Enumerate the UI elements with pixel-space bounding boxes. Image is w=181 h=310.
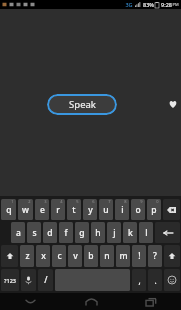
button[interactable]: Speak bbox=[47, 94, 117, 115]
button[interactable]: Back bbox=[0, 293, 61, 310]
staticText: 4 bbox=[60, 199, 63, 204]
button[interactable]: m bbox=[116, 245, 130, 267]
staticText: x bbox=[41, 250, 46, 262]
staticText: h bbox=[95, 227, 101, 239]
button[interactable]: ? bbox=[148, 245, 162, 267]
staticText: g bbox=[79, 227, 85, 239]
staticText: 0 bbox=[156, 199, 159, 204]
staticText: 8 bbox=[124, 199, 127, 204]
staticText: 7 bbox=[108, 199, 111, 204]
button[interactable]: r bbox=[51, 199, 65, 220]
staticText: m bbox=[119, 250, 128, 262]
staticText: n bbox=[104, 250, 110, 262]
button[interactable]: ?123 bbox=[1, 269, 19, 291]
staticText: 3 bbox=[44, 199, 47, 204]
staticText: 5 bbox=[76, 199, 79, 204]
button[interactable]: Shift bbox=[1, 245, 18, 267]
staticText: PM bbox=[172, 2, 179, 7]
button[interactable]: ! bbox=[132, 245, 146, 267]
button[interactable]: Enter bbox=[155, 222, 180, 243]
button[interactable]: t bbox=[67, 199, 81, 220]
staticText: ? bbox=[153, 250, 157, 262]
staticText: y bbox=[88, 204, 93, 216]
staticText: e bbox=[40, 204, 45, 216]
staticText: f bbox=[64, 227, 68, 239]
button[interactable]: h bbox=[91, 222, 105, 243]
button[interactable]: z bbox=[20, 245, 34, 267]
button[interactable]: a bbox=[11, 222, 25, 243]
button[interactable]: Recents bbox=[121, 293, 181, 310]
button[interactable]: , bbox=[132, 269, 146, 291]
button[interactable]: p bbox=[147, 199, 161, 220]
staticText: j bbox=[113, 227, 116, 239]
staticText: Speak bbox=[69, 98, 96, 111]
button[interactable]: l bbox=[139, 222, 153, 243]
staticText: 6 bbox=[92, 199, 95, 204]
staticText: a bbox=[16, 227, 21, 239]
button[interactable]: g bbox=[75, 222, 89, 243]
button[interactable]: Delete bbox=[163, 199, 180, 220]
button[interactable]: . bbox=[148, 269, 162, 291]
button[interactable]: i bbox=[115, 199, 129, 220]
button[interactable]: Favorite bbox=[165, 12, 181, 196]
button[interactable]: w bbox=[18, 199, 33, 220]
staticText: o bbox=[135, 204, 141, 216]
staticText: v bbox=[73, 250, 78, 262]
staticText: p bbox=[151, 204, 157, 216]
staticText: 9:28 bbox=[161, 1, 172, 8]
staticText: 9 bbox=[140, 199, 143, 204]
button[interactable]: v bbox=[68, 245, 82, 267]
staticText: 83% bbox=[143, 1, 154, 8]
staticText: 2 bbox=[28, 199, 31, 204]
button[interactable]: k bbox=[123, 222, 137, 243]
staticText: 3G bbox=[125, 1, 133, 8]
button[interactable]: q bbox=[1, 199, 16, 220]
staticText: / bbox=[44, 274, 48, 286]
staticText: . bbox=[154, 275, 157, 286]
button[interactable]: y bbox=[83, 199, 97, 220]
button[interactable]: / bbox=[38, 269, 53, 291]
button[interactable]: n bbox=[100, 245, 114, 267]
staticText: s bbox=[32, 227, 37, 239]
button[interactable]: b bbox=[84, 245, 98, 267]
staticText: , bbox=[138, 275, 141, 286]
button[interactable]: u bbox=[99, 199, 113, 220]
button[interactable]: d bbox=[43, 222, 57, 243]
staticText: w bbox=[22, 204, 29, 216]
button[interactable]: f bbox=[59, 222, 73, 243]
staticText: 1 bbox=[11, 199, 14, 204]
button[interactable]: c bbox=[52, 245, 66, 267]
button[interactable]: Home bbox=[61, 293, 121, 310]
button[interactable]: j bbox=[107, 222, 121, 243]
staticText: ?123 bbox=[4, 277, 16, 284]
staticText: t bbox=[72, 204, 76, 216]
button[interactable]: s bbox=[27, 222, 41, 243]
button[interactable]: Voice input bbox=[21, 269, 36, 291]
staticText: r bbox=[56, 204, 60, 216]
staticText: u bbox=[103, 204, 109, 216]
staticText: c bbox=[57, 250, 62, 262]
staticText: z bbox=[25, 250, 30, 262]
staticText: ! bbox=[138, 250, 141, 262]
staticText: d bbox=[47, 227, 53, 239]
button[interactable]: Shift bbox=[164, 245, 180, 267]
button[interactable]: Emoji bbox=[164, 269, 180, 291]
button[interactable]: x bbox=[36, 245, 50, 267]
button[interactable]: e bbox=[35, 199, 49, 220]
staticText: k bbox=[128, 227, 133, 239]
staticText: b bbox=[88, 250, 94, 262]
staticText: q bbox=[6, 204, 12, 216]
staticText: i bbox=[121, 204, 124, 216]
staticText: l bbox=[145, 227, 148, 239]
button[interactable]: o bbox=[131, 199, 145, 220]
